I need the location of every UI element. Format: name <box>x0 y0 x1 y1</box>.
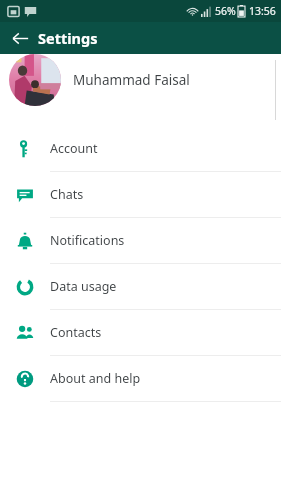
button[interactable]: Back <box>7 25 33 51</box>
button[interactable]: Notifications <box>0 218 281 263</box>
staticText: Settings <box>38 28 98 48</box>
staticText: 13:56 <box>249 4 276 18</box>
staticText: Notifications <box>50 232 125 249</box>
button[interactable]: Muhammad Faisal <box>0 54 281 126</box>
staticText: 56% <box>215 4 236 18</box>
staticText: About and help <box>50 370 141 387</box>
button[interactable]: Data usage <box>0 264 281 309</box>
button[interactable]: Chats <box>0 172 281 217</box>
staticText: Muhammad Faisal <box>73 71 190 89</box>
staticText: Account <box>50 140 98 157</box>
staticText: Contacts <box>50 324 102 341</box>
button[interactable]: Account <box>0 126 281 171</box>
button[interactable]: About and help <box>0 356 281 401</box>
button[interactable]: Contacts <box>0 310 281 355</box>
staticText: Chats <box>50 186 84 203</box>
staticText: Data usage <box>50 278 117 295</box>
